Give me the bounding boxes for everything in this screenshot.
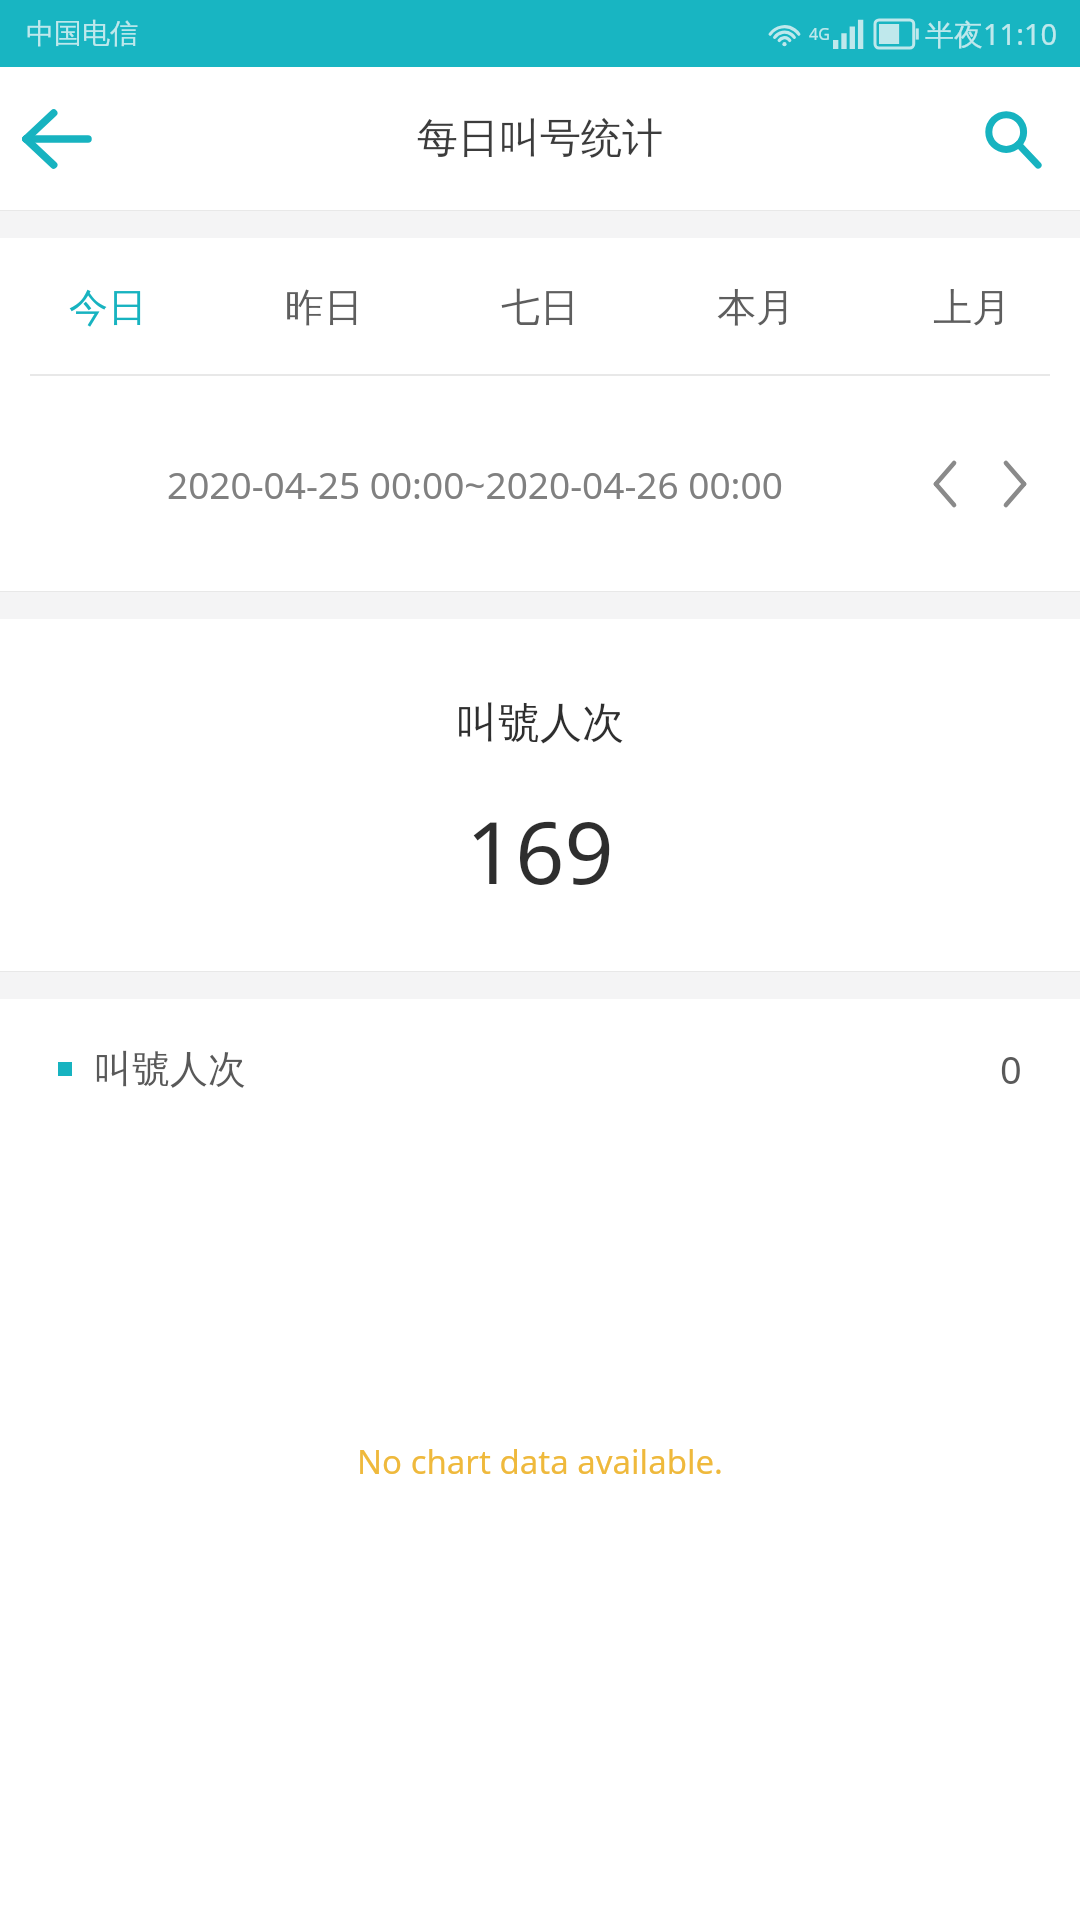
staticText: 每日叫号统计 — [417, 113, 663, 165]
button[interactable]: 今日 — [0, 238, 216, 376]
button[interactable]: Next period — [980, 449, 1050, 519]
staticText: 七日 — [501, 283, 579, 332]
staticText: 叫號人次 — [94, 1045, 246, 1093]
button[interactable]: Previous period — [910, 449, 980, 519]
staticText: 169 — [466, 792, 614, 909]
button[interactable]: 昨日 — [216, 238, 432, 376]
button[interactable]: Back — [0, 84, 110, 194]
staticText: 半夜11:10 — [925, 14, 1058, 54]
staticText: 4G — [809, 23, 830, 45]
staticText: 今日 — [69, 283, 147, 332]
staticText: 上月 — [933, 283, 1011, 332]
staticText: No chart data available. — [357, 1439, 723, 1484]
button[interactable]: 上月 — [864, 238, 1080, 376]
button[interactable]: Search — [962, 89, 1062, 189]
button[interactable]: 本月 — [648, 238, 864, 376]
staticText: 2020-04-25 00:00~2020-04-26 00:00 — [167, 459, 783, 509]
staticText: 中国电信 — [26, 16, 138, 51]
staticText: 昨日 — [285, 283, 363, 332]
staticText: 叫號人次 — [456, 697, 624, 750]
staticText: 0 — [1000, 1043, 1022, 1095]
button[interactable]: 七日 — [432, 238, 648, 376]
staticText: 本月 — [717, 283, 795, 332]
